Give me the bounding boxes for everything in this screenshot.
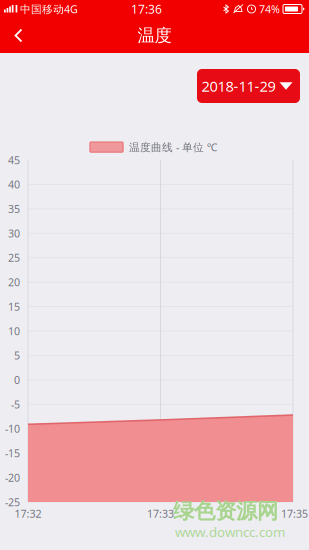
staticText: 35 [8,202,20,216]
button[interactable]: Back [0,17,39,53]
staticText: 10 [8,324,20,338]
staticText: 17:35 [281,506,308,521]
staticText: 2018-11-29 [201,76,275,96]
staticText: -5 [11,397,20,411]
staticText: -25 [5,495,20,509]
staticText: 17:32 [14,506,41,521]
staticText: -10 [5,422,20,436]
staticText: -15 [5,446,20,460]
staticText: 17:33 [147,506,174,521]
staticText: 温度曲线 - 单位 ℃ [129,140,218,154]
staticText: 中国移动4G [20,2,78,16]
staticText: 绿色资源网 [173,498,278,524]
staticText: 20 [8,275,20,289]
staticText: 25 [8,251,20,265]
staticText: 15 [8,299,20,314]
staticText: 温度 [137,25,171,46]
staticText: 74% [259,2,280,16]
staticText: www.downcc.com [175,523,285,541]
button[interactable]: 2018-11-29 [197,69,300,103]
staticText: 0 [14,373,20,387]
staticText: -20 [5,470,20,485]
staticText: 17:36 [131,1,162,17]
staticText: 5 [14,348,20,362]
staticText: 30 [8,226,20,240]
staticText: 40 [8,177,20,191]
staticText: 45 [8,153,20,167]
